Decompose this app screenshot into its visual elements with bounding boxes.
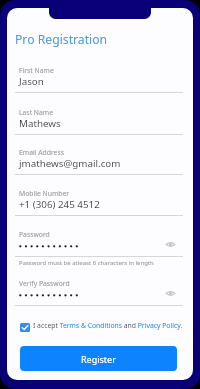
staticText: Pro Registration [15,31,108,48]
button[interactable]: I accept Terms & Conditions and Privacy … [20,323,183,332]
staticText: Register [81,353,116,365]
staticText: Last Name [19,108,54,117]
staticText: Mobile Number [19,189,70,198]
staticText: Password [19,230,50,239]
staticText: First Name [19,66,54,75]
staticText: I accept Terms & Conditions and Privacy … [33,321,183,330]
staticText: +1 (306) 245 4512 [19,198,100,211]
button[interactable]: Show password [165,290,176,297]
staticText: Email Address [19,148,64,157]
button[interactable]: Show password [165,241,176,248]
staticText: Mathews [19,117,61,130]
staticText: Jason [19,75,44,88]
button[interactable]: Register [20,346,177,371]
staticText: jmathews@gmail.com [19,157,121,170]
staticText: Verify Password [19,279,70,288]
staticText: Password must be atleast 6 characters in… [19,259,154,267]
